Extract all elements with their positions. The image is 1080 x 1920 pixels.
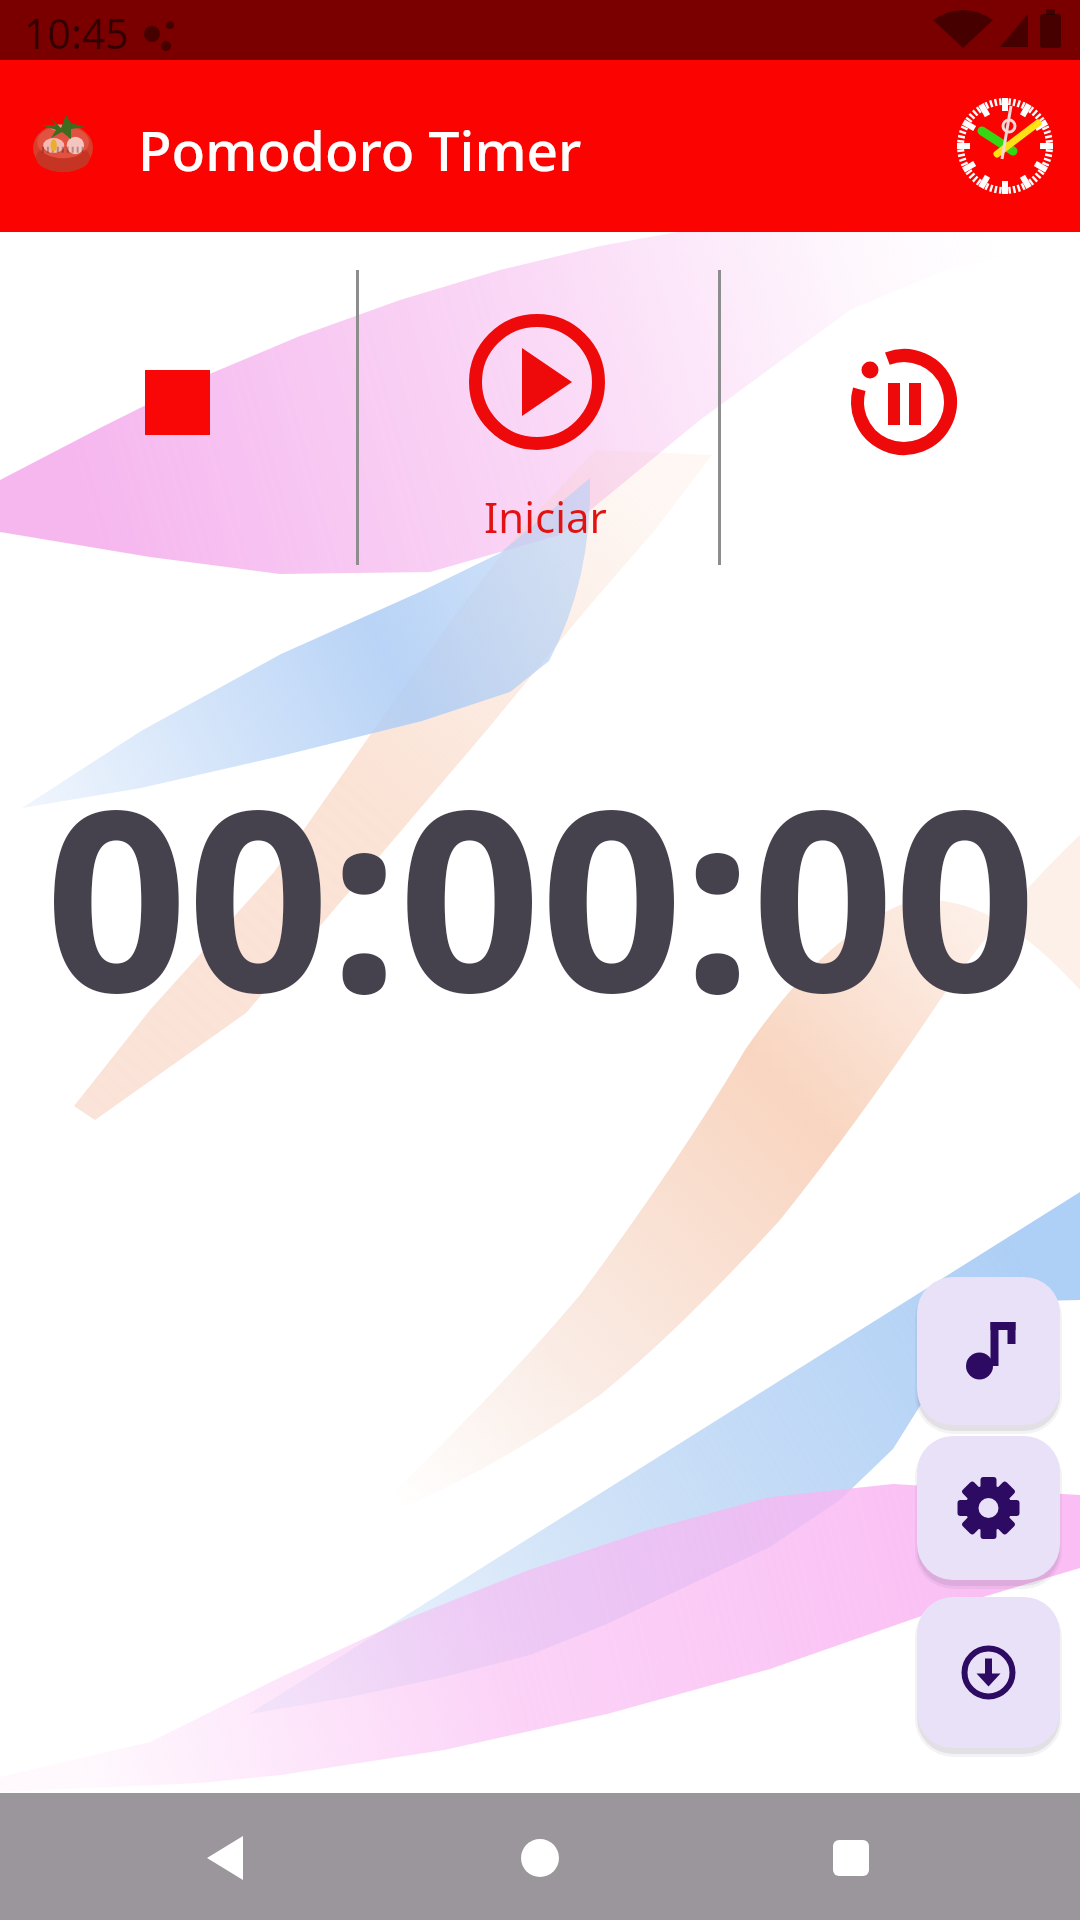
button[interactable] (500, 1818, 580, 1898)
staticText: 10:45 (24, 5, 129, 61)
button[interactable] (917, 1597, 1060, 1748)
button[interactable] (834, 332, 974, 472)
button[interactable] (917, 1436, 1060, 1580)
button[interactable]: Iniciar (447, 294, 627, 544)
button[interactable] (811, 1818, 891, 1898)
staticText: Iniciar (484, 488, 607, 545)
button[interactable] (955, 96, 1055, 196)
button[interactable] (131, 356, 224, 449)
button[interactable] (185, 1818, 265, 1898)
staticText: 00:00:00 (45, 725, 1036, 1066)
staticText: Pomodoro Timer (138, 112, 582, 187)
button[interactable] (917, 1277, 1060, 1425)
